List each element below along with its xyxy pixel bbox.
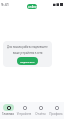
button[interactable]: Устройства (16, 102, 32, 116)
staticText: ваше устройство к сети (13, 51, 43, 55)
staticText: Для начала работы подключите (7, 45, 48, 49)
staticText: Профиль (49, 112, 63, 116)
button[interactable]: Профиль (48, 102, 64, 116)
button[interactable]: Главная (0, 102, 16, 116)
staticText: Устройства (16, 112, 32, 116)
staticText: 9:41 (1, 2, 9, 7)
button[interactable]: Подключить (17, 57, 38, 65)
staticText: Отчёты (35, 112, 46, 116)
staticText: Главная (2, 112, 14, 116)
button[interactable]: online (27, 4, 37, 9)
staticText: Подключить (20, 60, 35, 63)
button[interactable]: Отчёты (32, 102, 48, 116)
button[interactable]: Для начала работы подключите (3, 41, 52, 67)
staticText: online (28, 5, 37, 9)
